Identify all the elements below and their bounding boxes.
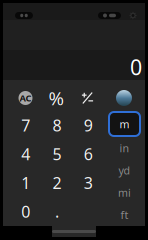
button[interactable]: 7 [10, 111, 41, 140]
button[interactable]: 1 [10, 168, 41, 197]
button[interactable]: % [41, 85, 72, 111]
button[interactable]: ft [104, 204, 145, 226]
staticText: 8 [52, 115, 61, 136]
staticText: 3 [84, 172, 93, 193]
staticText: ft [120, 208, 128, 222]
button[interactable]: 0 [10, 197, 41, 226]
button[interactable]: Settings [125, 8, 141, 23]
button[interactable]: 5 [41, 140, 73, 169]
button[interactable]: m [104, 111, 145, 137]
staticText: yd [118, 163, 130, 177]
staticText: mi [118, 185, 131, 200]
staticText: 1 [21, 172, 30, 193]
button[interactable]: 6 [73, 140, 104, 169]
staticText: 6 [84, 143, 93, 165]
staticText: m [119, 117, 129, 131]
button[interactable]: Toggle sign [72, 85, 103, 111]
staticText: 5 [52, 143, 61, 165]
staticText: % [48, 86, 64, 110]
staticText: 9 [84, 115, 93, 136]
button[interactable]: 8 [41, 111, 73, 140]
staticText: . [55, 201, 59, 222]
button[interactable]: . [41, 197, 73, 226]
staticText: 0 [21, 201, 30, 222]
button[interactable]: 3 [73, 168, 104, 197]
button[interactable]: yd [104, 159, 145, 181]
button[interactable]: 4 [10, 140, 41, 169]
staticText: 4 [21, 143, 30, 165]
staticText: in [119, 141, 129, 155]
button[interactable]: in [104, 137, 145, 159]
staticText: AC [19, 92, 31, 104]
button[interactable]: mi [104, 181, 145, 204]
button[interactable]: 2 [41, 168, 73, 197]
staticText: 2 [52, 172, 61, 193]
button[interactable]: Choose unit [103, 85, 145, 111]
staticText: 0 [130, 53, 142, 81]
button[interactable]: AC [10, 85, 41, 111]
button[interactable]: 9 [73, 111, 104, 140]
staticText: 7 [21, 115, 30, 136]
